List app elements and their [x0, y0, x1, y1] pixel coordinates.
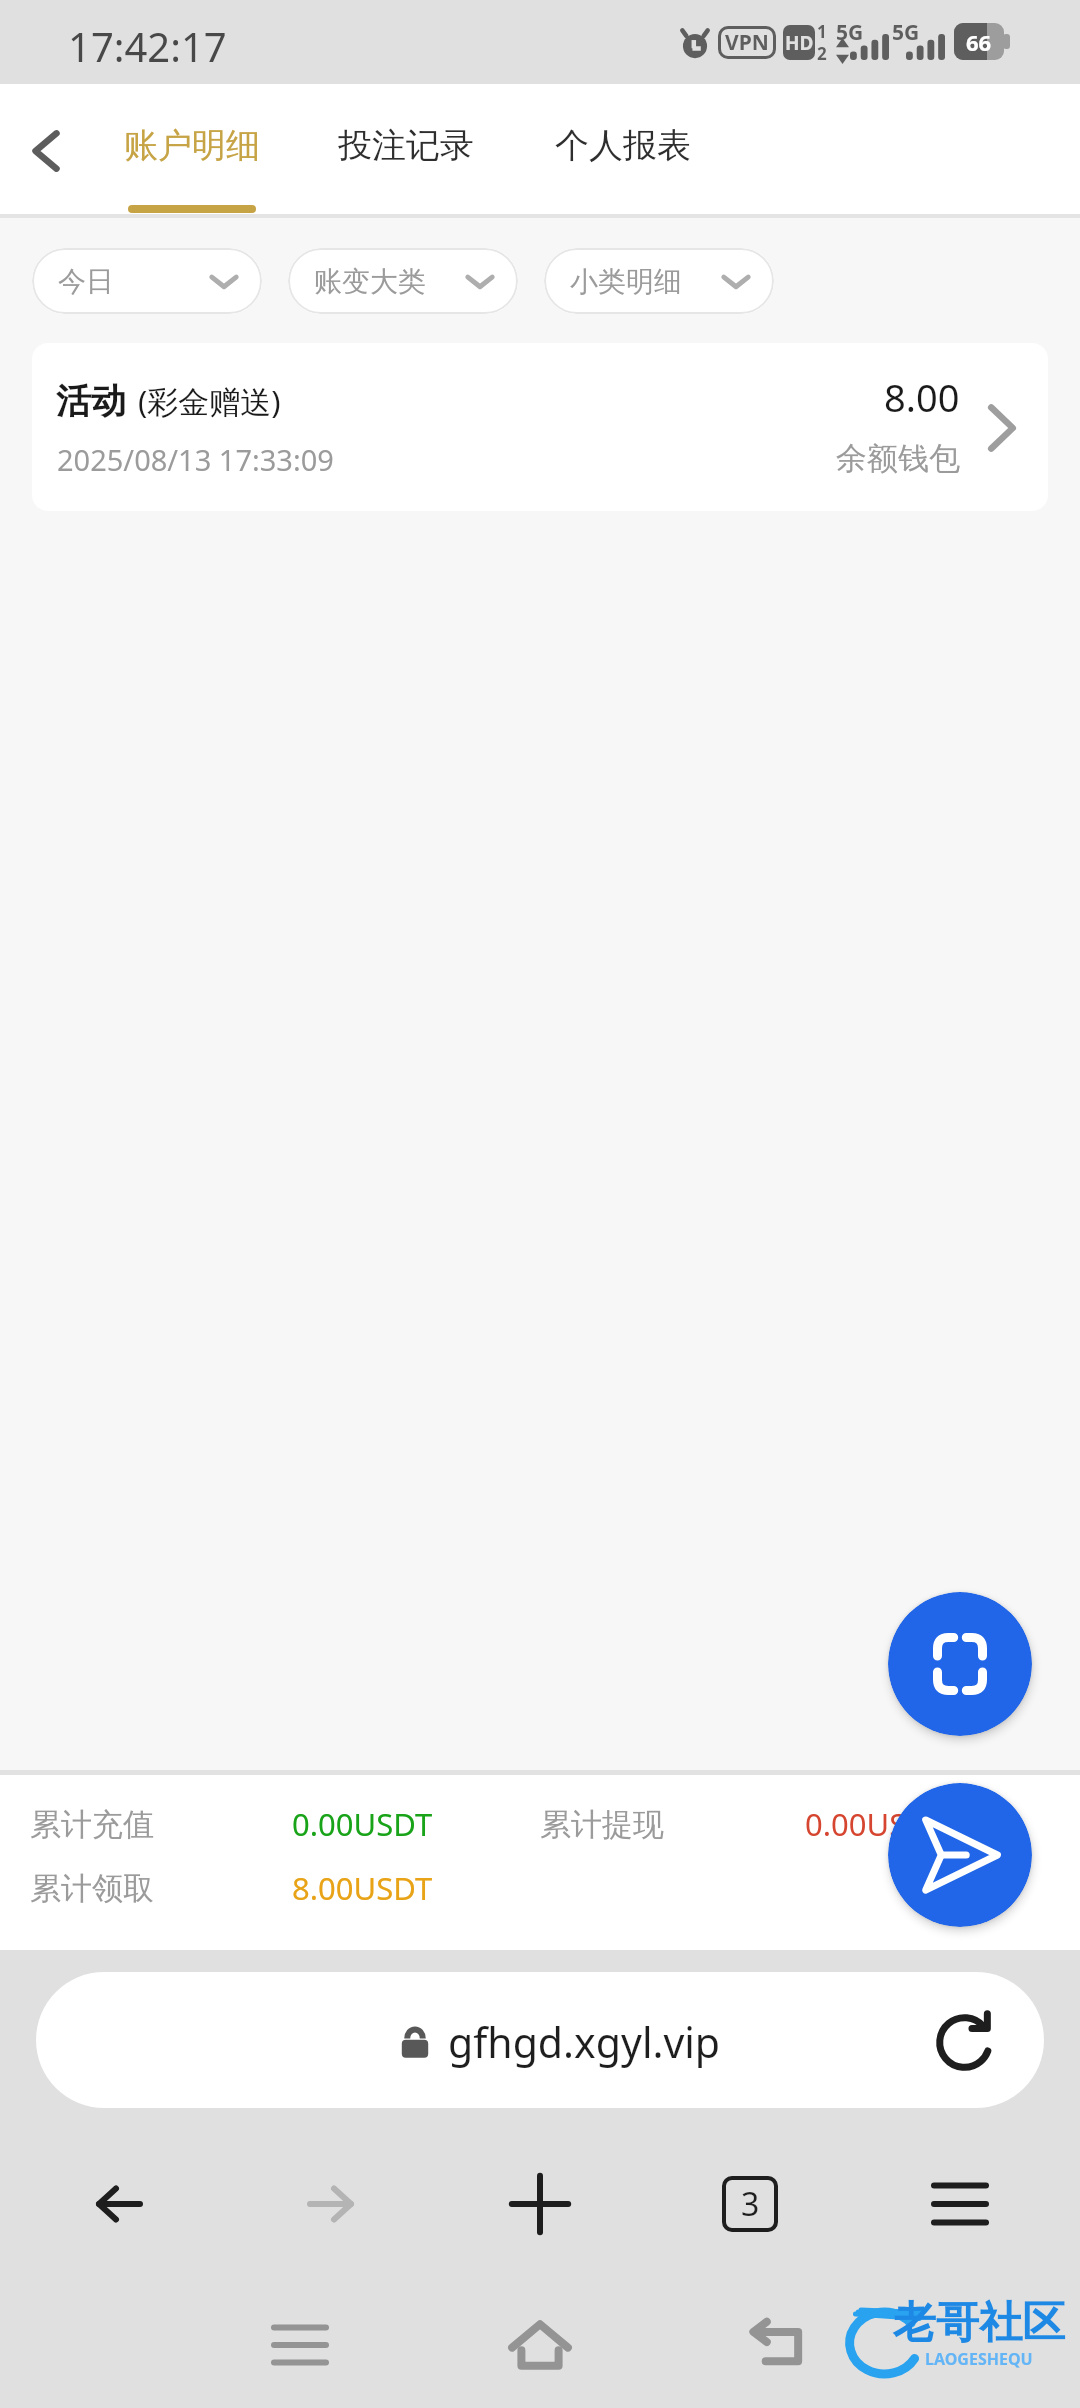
staticText: 账户明细	[124, 124, 260, 167]
staticText: 小类明细	[570, 264, 682, 299]
staticText: 今日	[58, 264, 114, 299]
button[interactable]: gfhgd.xgyl.vip	[36, 1972, 1044, 2108]
button[interactable]: Recents	[240, 2290, 360, 2400]
button[interactable]: 个人报表	[536, 84, 710, 215]
staticText: HD	[785, 30, 814, 56]
button[interactable]: Back	[0, 91, 93, 211]
button[interactable]: 账户明细	[106, 84, 278, 215]
button[interactable]: Go forward	[270, 2149, 390, 2259]
staticText: 活动	[56, 379, 126, 423]
button[interactable]: Tabs	[690, 2149, 810, 2259]
button[interactable]: 小类明细	[544, 248, 774, 314]
button[interactable]: 投注记录	[320, 84, 492, 215]
staticText: 17:42:17	[68, 19, 227, 73]
staticText: 累计领取	[30, 1869, 292, 1908]
staticText: 投注记录	[338, 124, 474, 167]
button[interactable]: 活动	[32, 343, 1048, 511]
button[interactable]: Go back	[60, 2149, 180, 2259]
button[interactable]: System back	[718, 2287, 838, 2397]
button[interactable]: New tab	[480, 2149, 600, 2259]
staticText: 个人报表	[555, 124, 691, 167]
staticText: 累计充值	[30, 1805, 292, 1844]
staticText: 5G	[836, 18, 864, 47]
button[interactable]: Scan QR code	[888, 1592, 1032, 1736]
staticText: 老哥社区	[893, 2296, 1065, 2350]
staticText: 66	[966, 27, 992, 57]
staticText: 3	[741, 2182, 760, 2226]
staticText: 0.00USDT	[292, 1803, 540, 1845]
staticText: 8.00	[884, 371, 960, 423]
button[interactable]: Send	[888, 1783, 1032, 1927]
button[interactable]: 今日	[32, 248, 262, 314]
staticText: 0.00USDT	[805, 1803, 946, 1845]
button[interactable]: Menu	[900, 2149, 1020, 2259]
staticText: VPN	[725, 28, 769, 57]
staticText: 账变大类	[314, 264, 426, 299]
staticText: 累计提现	[540, 1805, 805, 1844]
staticText: LAOGESHEQU	[925, 2348, 1033, 2370]
button[interactable]: Reload	[934, 2007, 1000, 2073]
staticText: 2025/08/13 17:33:09	[57, 440, 334, 479]
staticText: 2	[817, 42, 827, 65]
staticText: (彩金赠送)	[138, 380, 281, 422]
staticText: 8.00USDT	[292, 1867, 433, 1909]
staticText: gfhgd.xgyl.vip	[448, 2014, 721, 2070]
staticText: 余额钱包	[836, 439, 960, 478]
button[interactable]: Home	[480, 2290, 600, 2400]
button[interactable]: 账变大类	[288, 248, 518, 314]
staticText: 1	[817, 20, 827, 43]
staticText: 5G	[892, 18, 920, 47]
